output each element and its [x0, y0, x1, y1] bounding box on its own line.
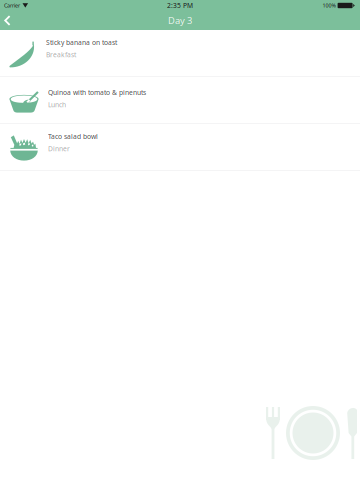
staticText: 2:35 PM — [167, 1, 193, 10]
staticText: Day 3 — [168, 14, 192, 27]
staticText: Breakfast — [46, 50, 76, 59]
staticText: 100% — [323, 2, 336, 9]
staticText: Carrier — [4, 2, 20, 9]
staticText: Sticky banana on toast — [46, 38, 117, 47]
button[interactable]: Sticky banana on toast — [0, 30, 360, 76]
button[interactable]: Back — [0, 12, 23, 29]
button[interactable]: Quinoa with tomato & pinenuts — [0, 77, 360, 123]
staticText: Lunch — [48, 100, 66, 109]
staticText: Quinoa with tomato & pinenuts — [48, 88, 146, 97]
button[interactable]: Taco salad bowl — [0, 124, 360, 170]
staticText: Dinner — [48, 144, 70, 153]
staticText: Taco salad bowl — [48, 132, 98, 141]
